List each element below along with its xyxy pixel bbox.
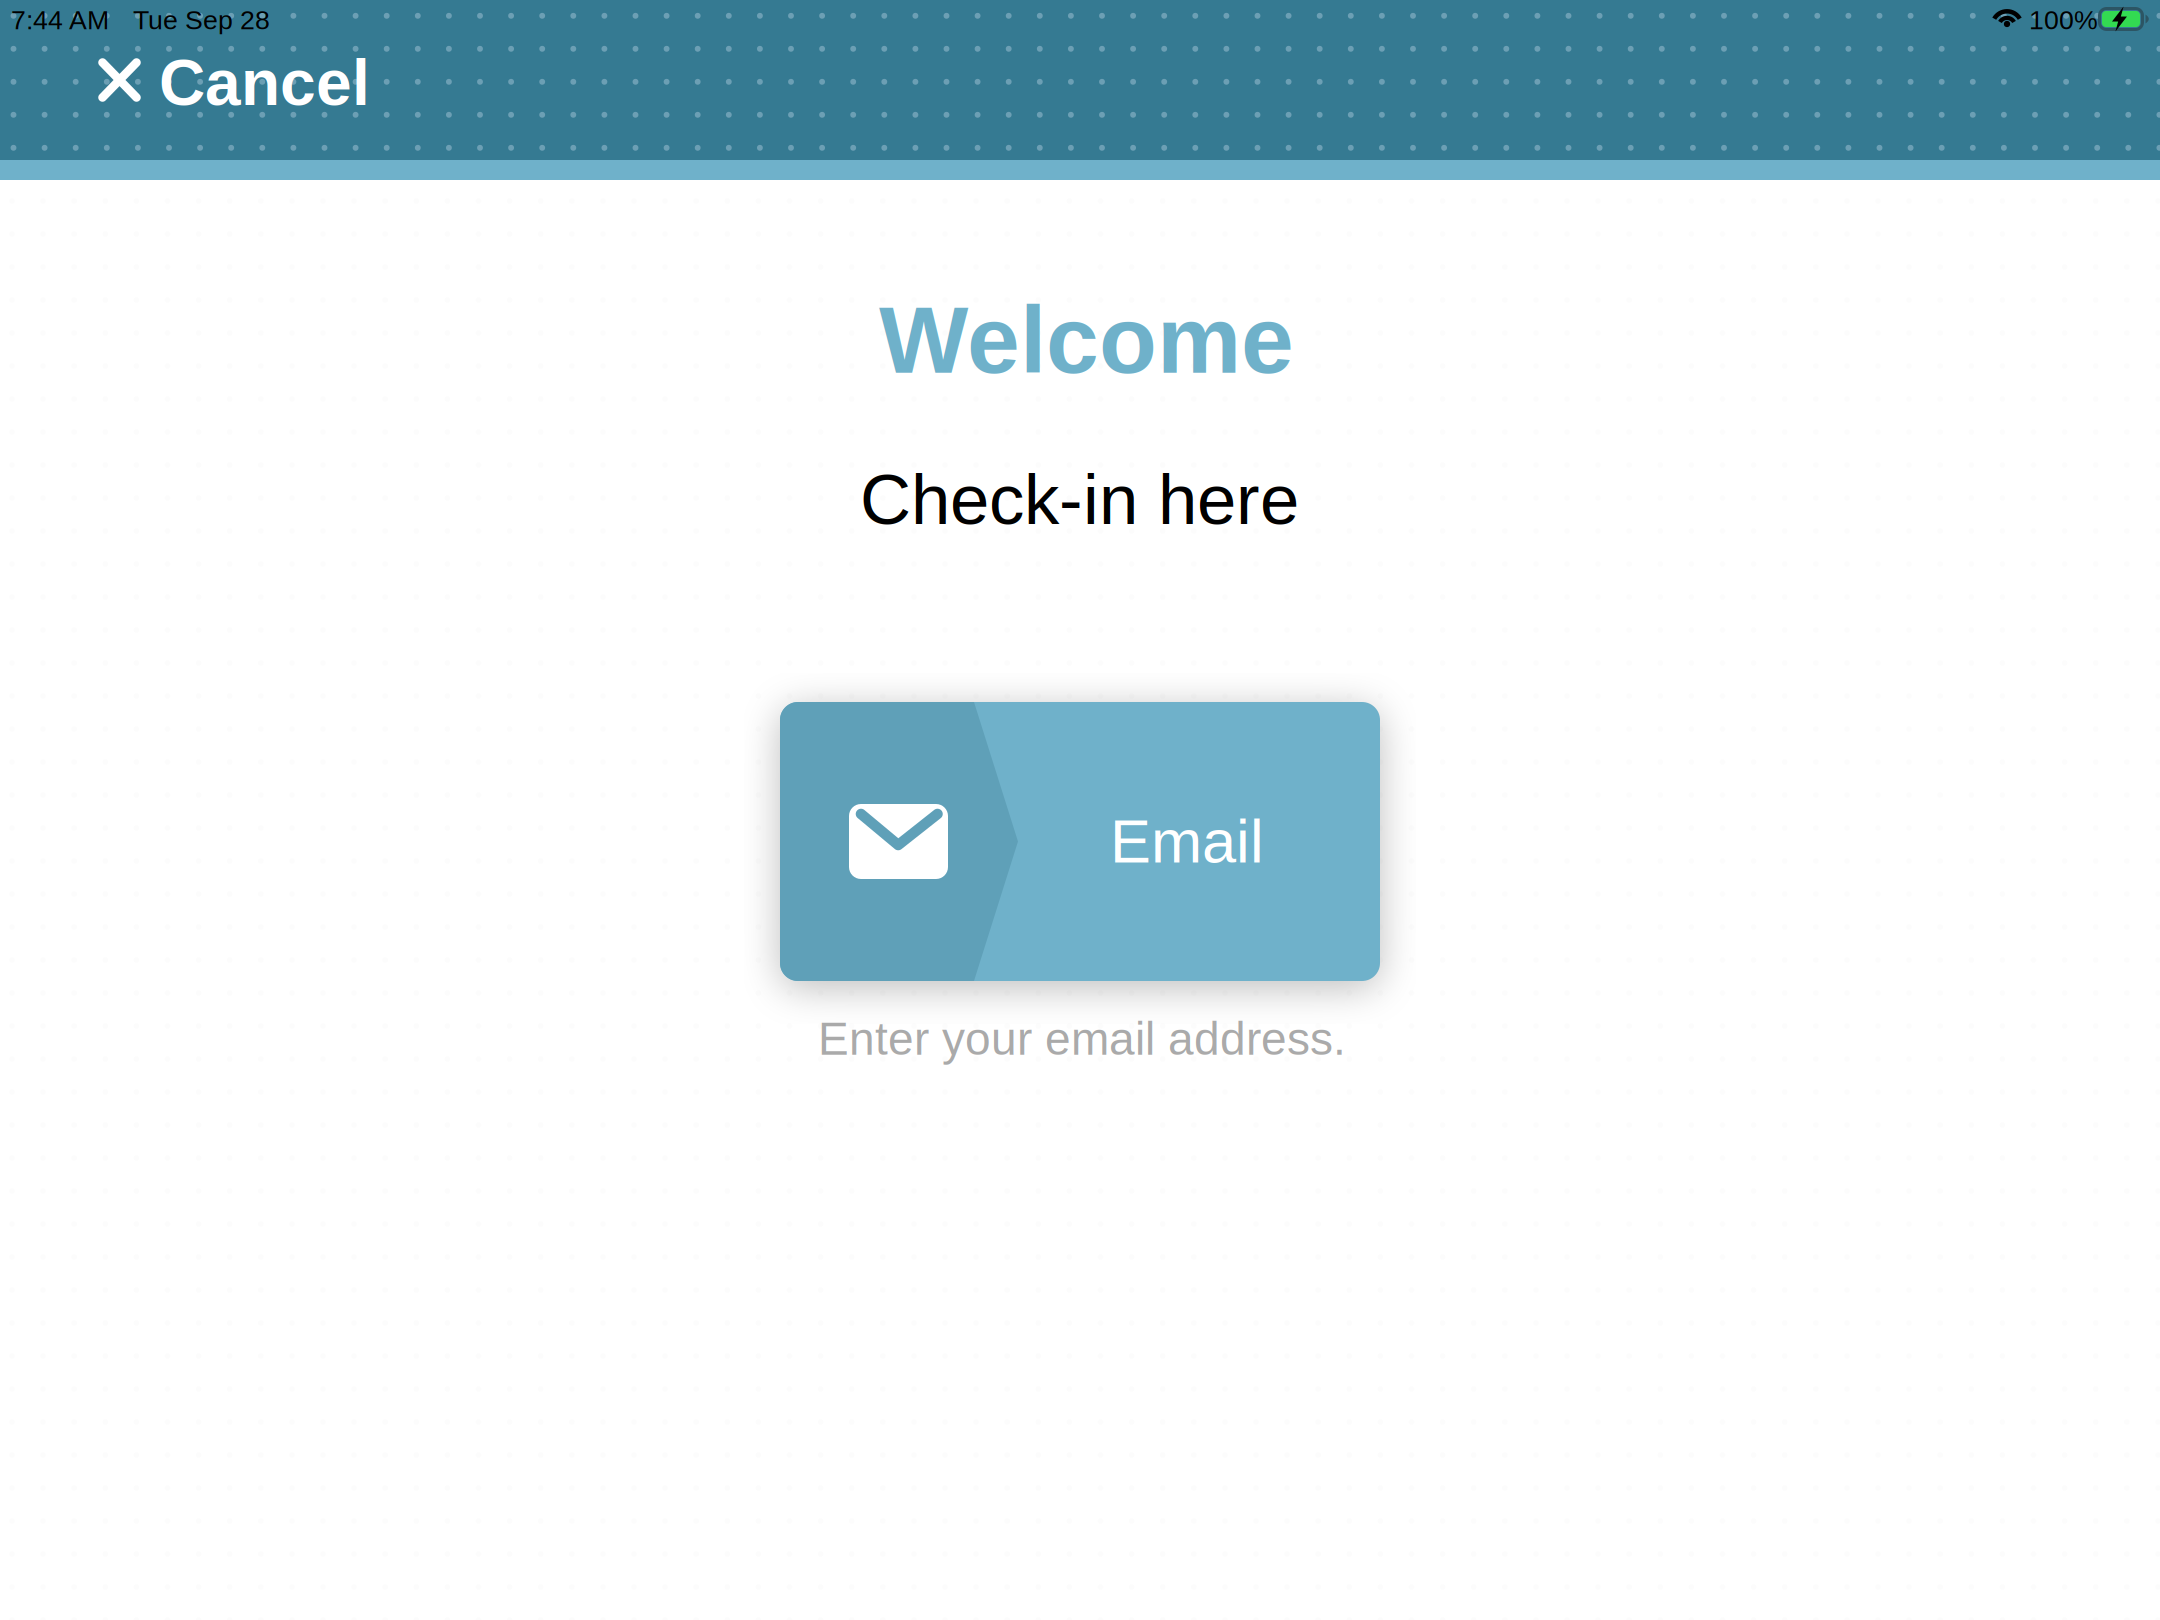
staticText: 7:44 AM xyxy=(11,5,109,35)
staticText: Email xyxy=(1110,807,1264,875)
staticText: Check-in here xyxy=(860,460,1299,539)
staticText: Cancel xyxy=(159,47,370,118)
staticText: 100% xyxy=(2029,5,2098,35)
button[interactable]: Cancel xyxy=(88,45,388,131)
staticText: Welcome xyxy=(879,287,1294,393)
button[interactable]: Email xyxy=(780,702,1380,981)
staticText: Tue Sep 28 xyxy=(133,5,270,35)
staticText: Enter your email address. xyxy=(818,1013,1346,1064)
